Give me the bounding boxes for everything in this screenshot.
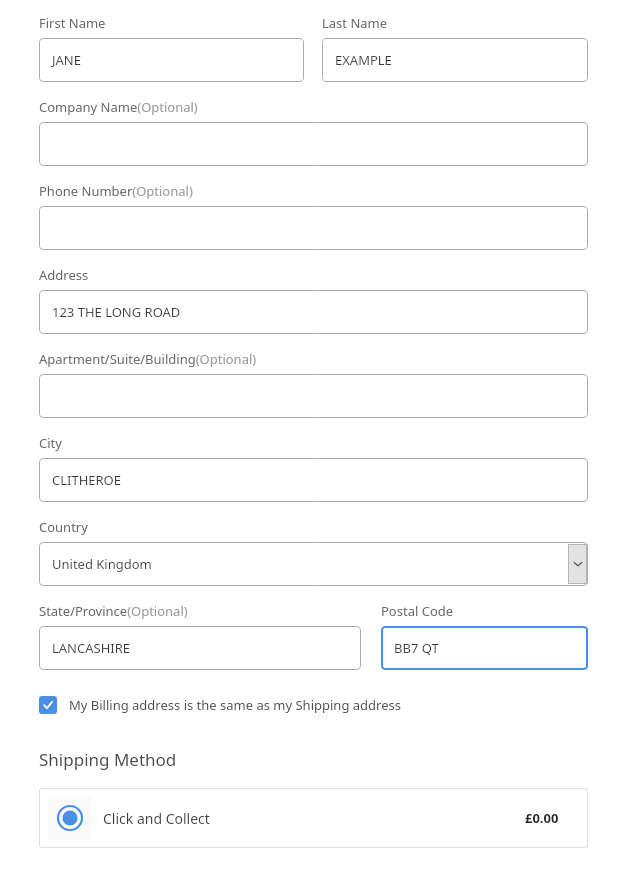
staticText: BB7 QT — [394, 639, 439, 657]
staticText: United Kingdom — [52, 555, 152, 573]
button[interactable]: LANCASHIRE — [39, 626, 361, 670]
staticText: EXAMPLE — [335, 51, 392, 69]
button[interactable]: EXAMPLE — [322, 38, 588, 82]
staticText: CLITHEROE — [52, 471, 121, 489]
staticText: Last Name — [322, 14, 388, 32]
staticText: Country — [39, 518, 88, 536]
staticText: LANCASHIRE — [52, 639, 131, 657]
staticText: Apartment/Suite/Building(Optional) — [39, 350, 257, 368]
button[interactable]: My Billing address is the same as my Shi… — [39, 696, 401, 714]
button[interactable]: BB7 QT — [381, 626, 588, 670]
button[interactable]: United Kingdom — [39, 542, 588, 586]
button[interactable]: Click and Collect — [39, 788, 588, 848]
staticText: Click and Collect — [103, 809, 210, 828]
button[interactable]: 123 THE LONG ROAD — [39, 290, 588, 334]
button[interactable]: JANE — [39, 38, 304, 82]
staticText: £0.00 — [525, 809, 559, 827]
other: Open country list — [568, 544, 587, 584]
button[interactable] — [39, 374, 588, 418]
staticText: Phone Number(Optional) — [39, 182, 193, 200]
staticText: 123 THE LONG ROAD — [52, 303, 181, 321]
staticText: City — [39, 434, 62, 452]
staticText: Address — [39, 266, 89, 284]
staticText: Shipping Method — [39, 748, 177, 771]
staticText: My Billing address is the same as my Shi… — [69, 696, 401, 714]
staticText: JANE — [52, 51, 81, 69]
staticText: State/Province(Optional) — [39, 602, 188, 620]
staticText: Company Name(Optional) — [39, 98, 198, 116]
button[interactable] — [39, 206, 588, 250]
button[interactable]: CLITHEROE — [39, 458, 588, 502]
button[interactable] — [39, 122, 588, 166]
staticText: Postal Code — [381, 602, 454, 620]
staticText: First Name — [39, 14, 106, 32]
